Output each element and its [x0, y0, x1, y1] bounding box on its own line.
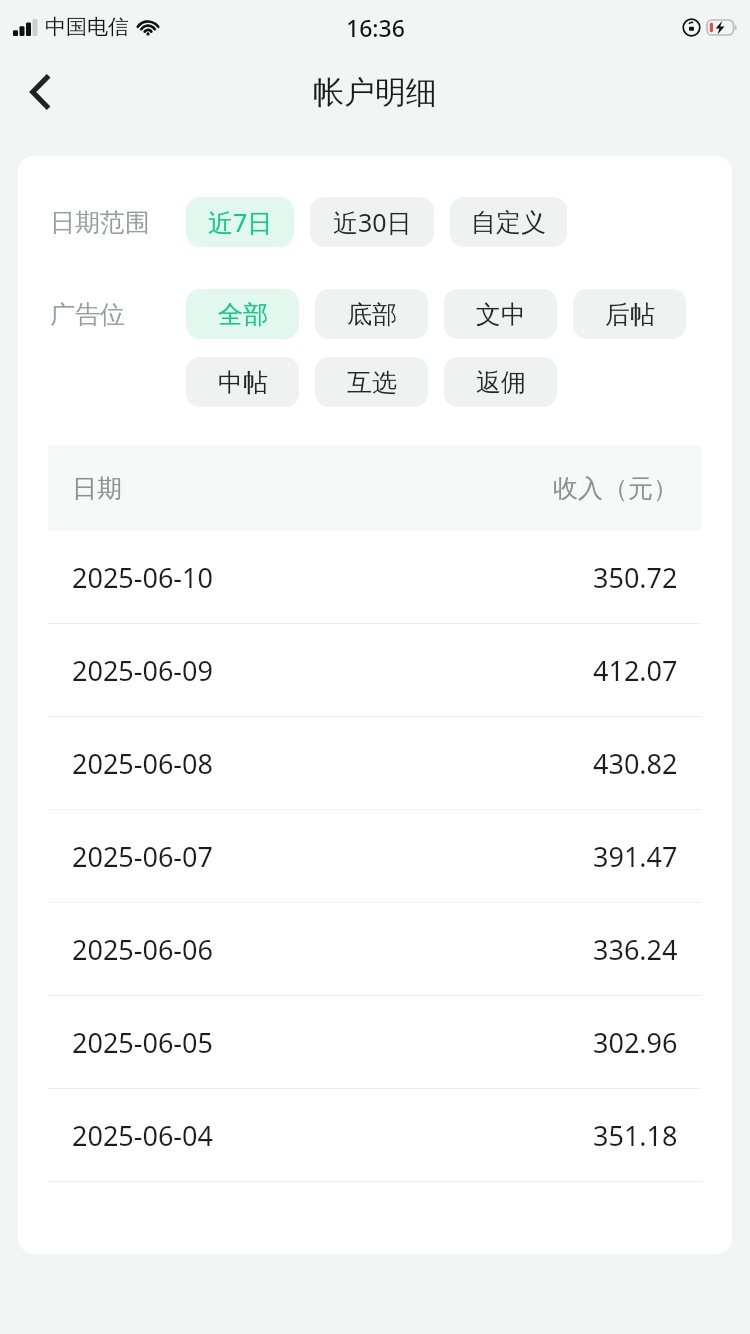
staticText: 近30日 — [333, 205, 412, 239]
staticText: 391.47 — [593, 838, 678, 875]
staticText: 日期 — [72, 473, 122, 504]
staticText: 350.72 — [593, 559, 678, 596]
staticText: 336.24 — [593, 931, 678, 968]
staticText: 2025-06-07 — [72, 838, 213, 875]
staticText: 广告位 — [50, 299, 125, 330]
button[interactable]: 2025-06-04 — [48, 1089, 702, 1181]
staticText: 后帖 — [605, 299, 655, 330]
button[interactable]: 2025-06-06 — [48, 903, 702, 995]
staticText: 412.07 — [593, 652, 678, 689]
button[interactable]: 全部 — [186, 289, 299, 339]
staticText: 2025-06-10 — [72, 559, 213, 596]
button[interactable]: 近7日 — [186, 197, 294, 247]
staticText: 互选 — [347, 367, 397, 398]
button[interactable]: 中帖 — [186, 357, 299, 407]
button[interactable]: 近30日 — [310, 197, 434, 247]
staticText: 自定义 — [471, 207, 546, 238]
button[interactable]: 2025-06-05 — [48, 996, 702, 1088]
button[interactable]: 自定义 — [450, 197, 567, 247]
staticText: 351.18 — [593, 1117, 678, 1154]
button[interactable]: 2025-06-08 — [48, 717, 702, 809]
button[interactable]: 后帖 — [573, 289, 686, 339]
button[interactable]: 返佣 — [444, 357, 557, 407]
staticText: 2025-06-06 — [72, 931, 213, 968]
staticText: 中帖 — [218, 367, 268, 398]
staticText: 返佣 — [476, 367, 526, 398]
button[interactable]: 2025-06-09 — [48, 624, 702, 716]
staticText: 2025-06-08 — [72, 745, 213, 782]
staticText: 日期范围 — [50, 207, 150, 238]
staticText: 430.82 — [593, 745, 678, 782]
button[interactable]: 文中 — [444, 289, 557, 339]
staticText: 底部 — [347, 299, 397, 330]
staticText: 文中 — [476, 299, 526, 330]
staticText: 302.96 — [593, 1024, 678, 1061]
staticText: 16:36 — [346, 12, 405, 43]
button[interactable]: 2025-06-07 — [48, 810, 702, 902]
staticText: 近7日 — [208, 205, 273, 239]
button[interactable]: 2025-06-10 — [48, 531, 702, 623]
staticText: 2025-06-04 — [72, 1117, 213, 1154]
staticText: 2025-06-09 — [72, 652, 213, 689]
staticText: 收入（元） — [553, 473, 678, 504]
staticText: 2025-06-05 — [72, 1024, 213, 1061]
button[interactable]: 互选 — [315, 357, 428, 407]
staticText: 全部 — [218, 299, 268, 330]
button[interactable]: Back — [12, 64, 68, 120]
button[interactable]: 底部 — [315, 289, 428, 339]
staticText: 中国电信 — [45, 14, 129, 40]
staticText: 帐户明细 — [313, 73, 437, 112]
